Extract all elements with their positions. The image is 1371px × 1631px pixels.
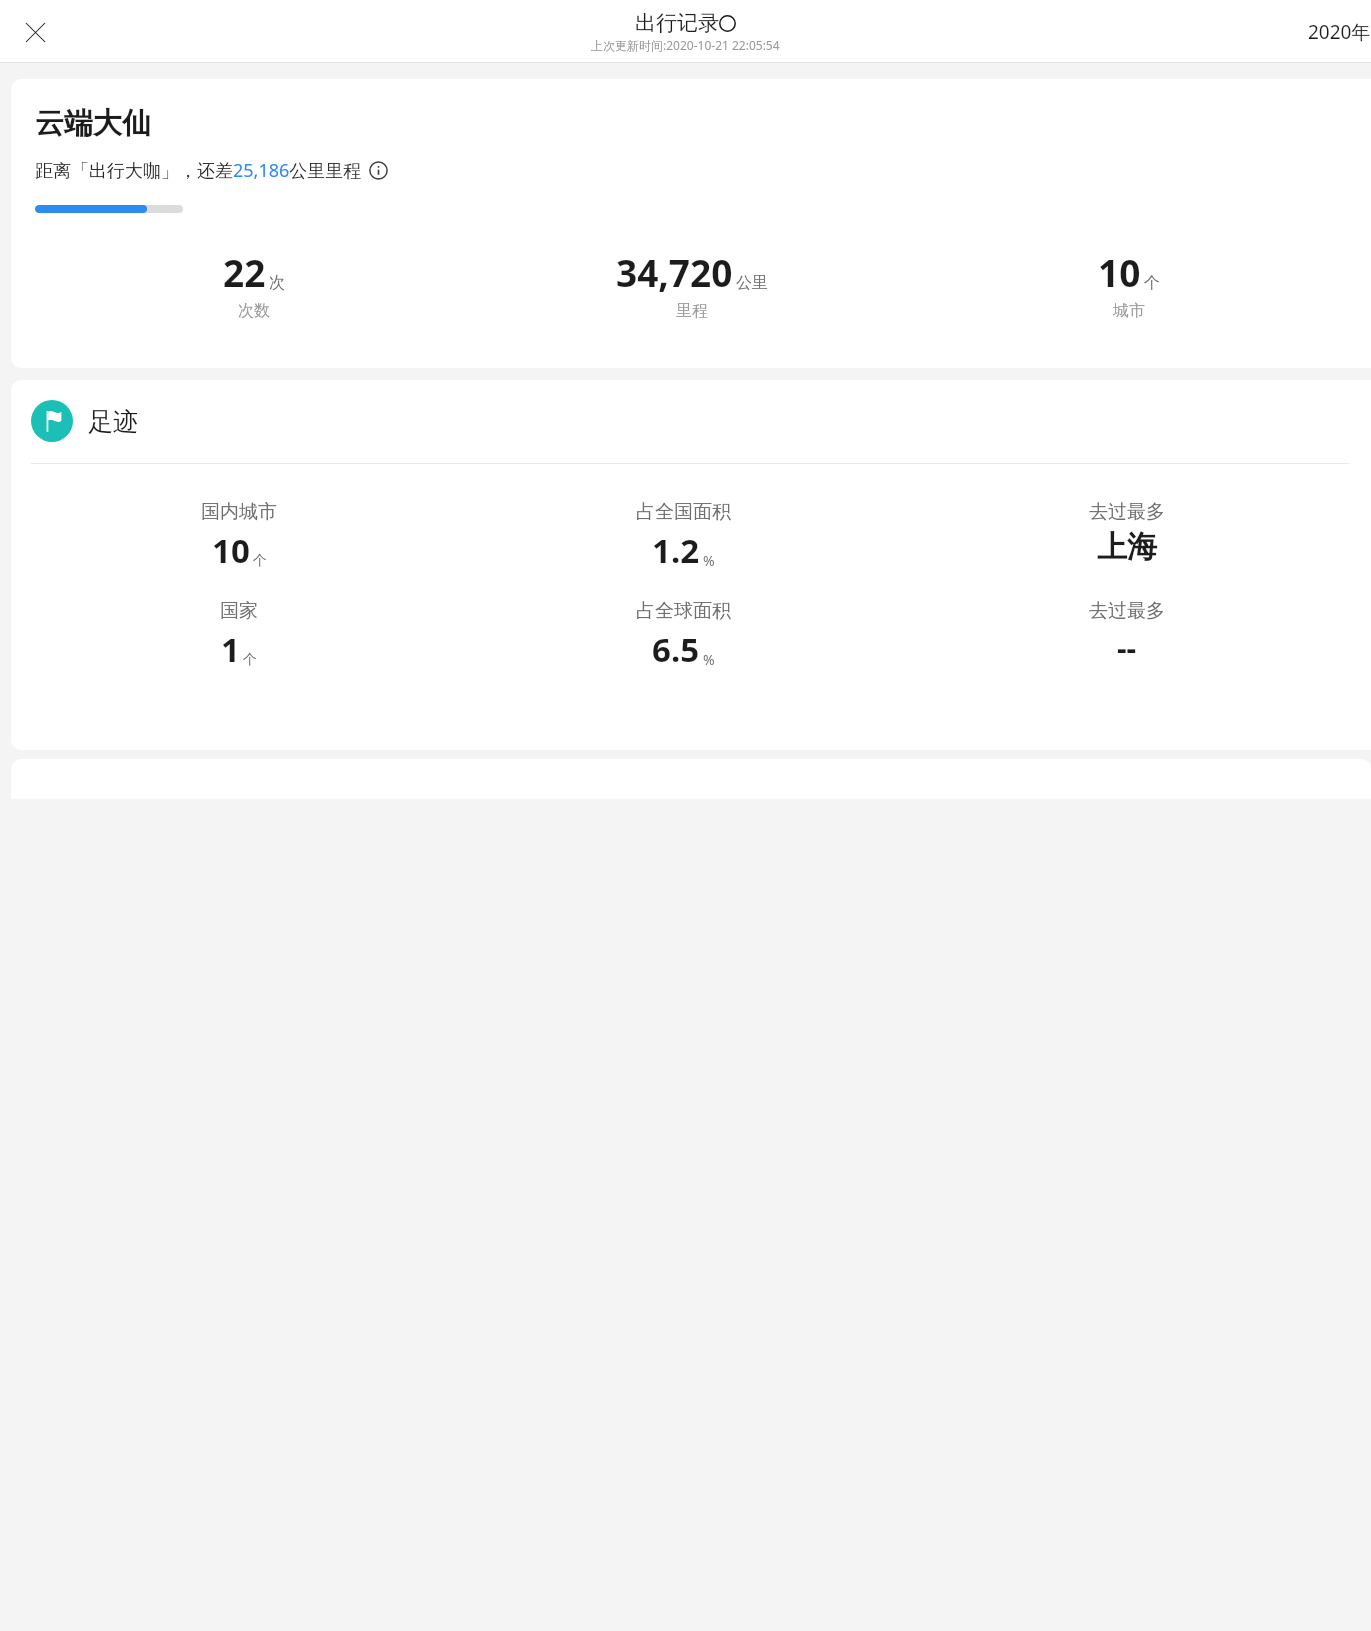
button[interactable]: 足迹 [11, 380, 1371, 750]
button[interactable]: 占全国面积 [461, 500, 905, 573]
staticText: 个 [243, 651, 257, 669]
staticText: 足迹 [88, 406, 138, 437]
button[interactable]: 22 [35, 247, 473, 321]
staticText: 国家 [220, 599, 258, 623]
staticText: 上次更新时间:2020-10-21 22:05:54 [591, 37, 780, 53]
staticText: 里程 [676, 301, 708, 321]
button[interactable]: 去过最多 [905, 500, 1349, 566]
staticText: 个 [1144, 273, 1160, 293]
staticText: 占全球面积 [636, 599, 731, 623]
staticText: 去过最多 [1089, 599, 1165, 623]
staticText: 距离「出行大咖」，还差25,186公里里程 [35, 158, 362, 183]
staticText: 1.2 [652, 528, 700, 573]
button[interactable]: 国家 [17, 599, 461, 672]
staticText: 1 [221, 627, 240, 672]
button[interactable]: 云端大仙 [11, 79, 1371, 368]
staticText: 2020年 [1308, 19, 1371, 45]
button[interactable]: Info [369, 161, 388, 180]
button[interactable]: 34,720 [473, 247, 910, 321]
button[interactable]: Close [15, 12, 55, 52]
staticText: 上海 [1097, 528, 1157, 566]
staticText: 10 [212, 528, 250, 573]
staticText: 出行记录 [635, 10, 719, 36]
staticText: 22 [223, 247, 266, 297]
staticText: 6.5 [652, 627, 700, 672]
staticText: 次数 [238, 301, 270, 321]
button[interactable]: 10 [910, 247, 1347, 321]
staticText: 公里 [736, 273, 768, 293]
button[interactable]: 占全球面积 [461, 599, 905, 672]
button[interactable]: 出行记录 [635, 10, 736, 36]
staticText: -- [1117, 627, 1137, 668]
staticText: 10 [1098, 247, 1141, 297]
staticText: 个 [253, 552, 267, 570]
staticText: 去过最多 [1089, 500, 1165, 524]
staticText: 城市 [1113, 301, 1145, 321]
staticText: 34,720 [616, 247, 733, 297]
staticText: 云端大仙 [35, 105, 151, 142]
staticText: % [703, 650, 715, 669]
button[interactable]: 2020年 [1308, 19, 1371, 45]
staticText: 占全国面积 [636, 500, 731, 524]
staticText: 国内城市 [201, 500, 277, 524]
button[interactable]: 去过最多 [905, 599, 1349, 668]
staticText: 次 [269, 273, 285, 293]
staticText: % [703, 551, 715, 570]
button[interactable]: 国内城市 [17, 500, 461, 573]
